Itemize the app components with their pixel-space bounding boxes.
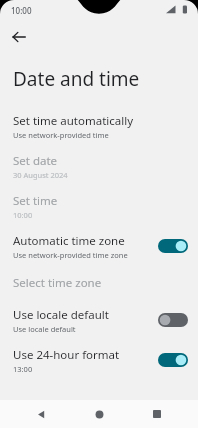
button[interactable]: Recent apps xyxy=(140,400,174,428)
staticText: Set date xyxy=(13,153,58,169)
staticText: Use network-provided time xyxy=(13,130,109,140)
button[interactable]: Use 24-hour format xyxy=(0,340,198,380)
button[interactable]: Toggle on xyxy=(158,237,188,255)
staticText: 30 August 2024 xyxy=(13,170,68,180)
staticText: Use network-provided time zone xyxy=(13,250,128,260)
button[interactable]: Select time zone xyxy=(0,266,198,300)
button[interactable]: Set time xyxy=(0,186,198,226)
staticText: Use 24-hour format xyxy=(13,347,120,363)
button[interactable]: Back xyxy=(6,24,32,50)
button[interactable]: Back xyxy=(24,400,58,428)
staticText: 10:00 xyxy=(13,210,33,220)
staticText: 13:00 xyxy=(13,364,33,374)
staticText: Set time xyxy=(13,193,58,209)
staticText: Select time zone xyxy=(13,275,102,291)
staticText: 10:00 xyxy=(11,5,32,16)
button[interactable]: Toggle off xyxy=(158,311,188,329)
staticText: Automatic time zone xyxy=(13,233,125,249)
button[interactable]: Use locale default xyxy=(0,300,198,340)
staticText: Use locale default xyxy=(13,324,76,334)
staticText: Use locale default xyxy=(13,307,109,323)
button[interactable]: Home xyxy=(82,400,116,428)
button[interactable]: Set time automatically xyxy=(0,106,198,146)
staticText: Set time automatically xyxy=(13,113,134,129)
button[interactable]: Toggle on xyxy=(158,351,188,369)
staticText: Date and time xyxy=(13,66,140,92)
button[interactable]: Automatic time zone xyxy=(0,226,198,266)
button[interactable]: Set date xyxy=(0,146,198,186)
